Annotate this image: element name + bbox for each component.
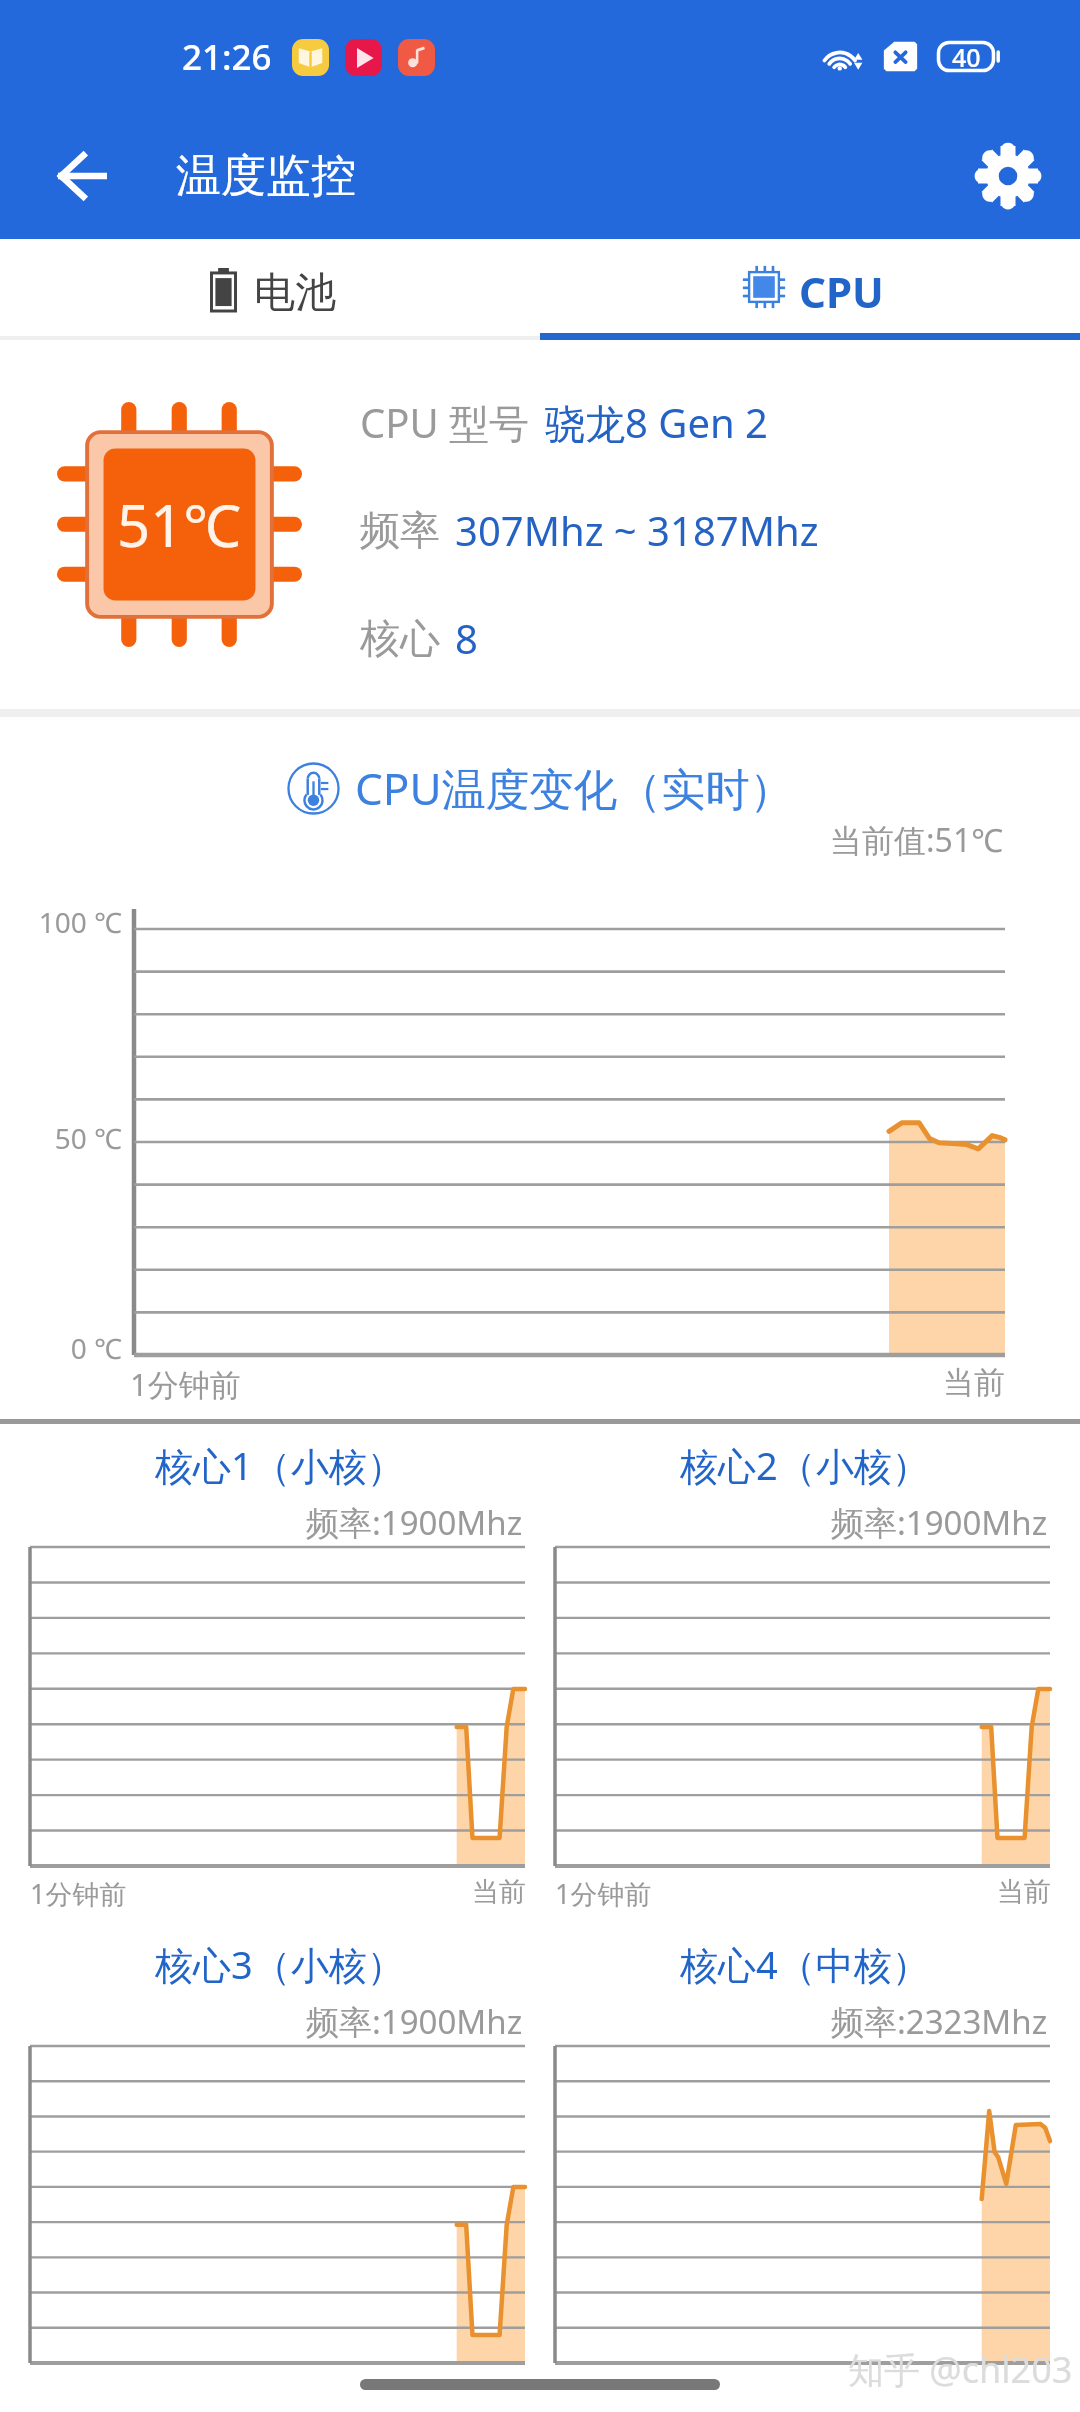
staticText: 核心3（小核） xyxy=(155,1938,405,1990)
button[interactable]: 电池 xyxy=(0,239,540,340)
staticText: 频率 xyxy=(360,505,440,555)
staticText: 21:26 xyxy=(182,33,272,81)
staticText: 频率:2323Mhz xyxy=(831,1999,1048,2044)
staticText: 0 ℃ xyxy=(0,1329,122,1367)
button[interactable]: CPU xyxy=(540,239,1080,340)
staticText: 骁龙8 Gen 2 xyxy=(545,395,768,450)
button[interactable]: Back xyxy=(36,130,128,222)
staticText: 电池 xyxy=(254,267,336,319)
staticText: 1分钟前 xyxy=(555,1875,652,1912)
staticText: 核心4（中核） xyxy=(680,1938,930,1990)
staticText: 当前 xyxy=(472,1875,526,1909)
staticText: 核心2（小核） xyxy=(680,1439,930,1491)
staticText: 知乎 @chl203 xyxy=(848,2345,1073,2394)
staticText: 频率:1900Mhz xyxy=(306,1999,523,2044)
staticText: CPU温度变化（实时） xyxy=(355,758,794,818)
staticText: 当前值:51℃ xyxy=(830,818,1004,862)
staticText: 核心 xyxy=(360,613,440,663)
button[interactable]: Settings xyxy=(962,130,1054,222)
staticText: 8 xyxy=(455,611,478,665)
staticText: 51℃ xyxy=(117,485,242,564)
staticText: 核心1（小核） xyxy=(155,1439,405,1491)
staticText: 50 ℃ xyxy=(0,1119,122,1157)
staticText: 频率:1900Mhz xyxy=(831,1500,1048,1545)
staticText: 温度监控 xyxy=(176,148,356,205)
staticText: 频率:1900Mhz xyxy=(306,1500,523,1545)
staticText: 1分钟前 xyxy=(30,1875,127,1912)
staticText: 当前 xyxy=(0,1363,1005,1402)
staticText: 100 ℃ xyxy=(0,903,122,941)
staticText: 1分钟前 xyxy=(130,1363,241,1405)
staticText: CPU 型号 xyxy=(360,395,530,450)
staticText: 307Mhz ~ 3187Mhz xyxy=(455,503,819,557)
staticText: 当前 xyxy=(997,1875,1051,1909)
staticText: 40 xyxy=(952,40,981,71)
staticText: CPU xyxy=(799,263,884,320)
